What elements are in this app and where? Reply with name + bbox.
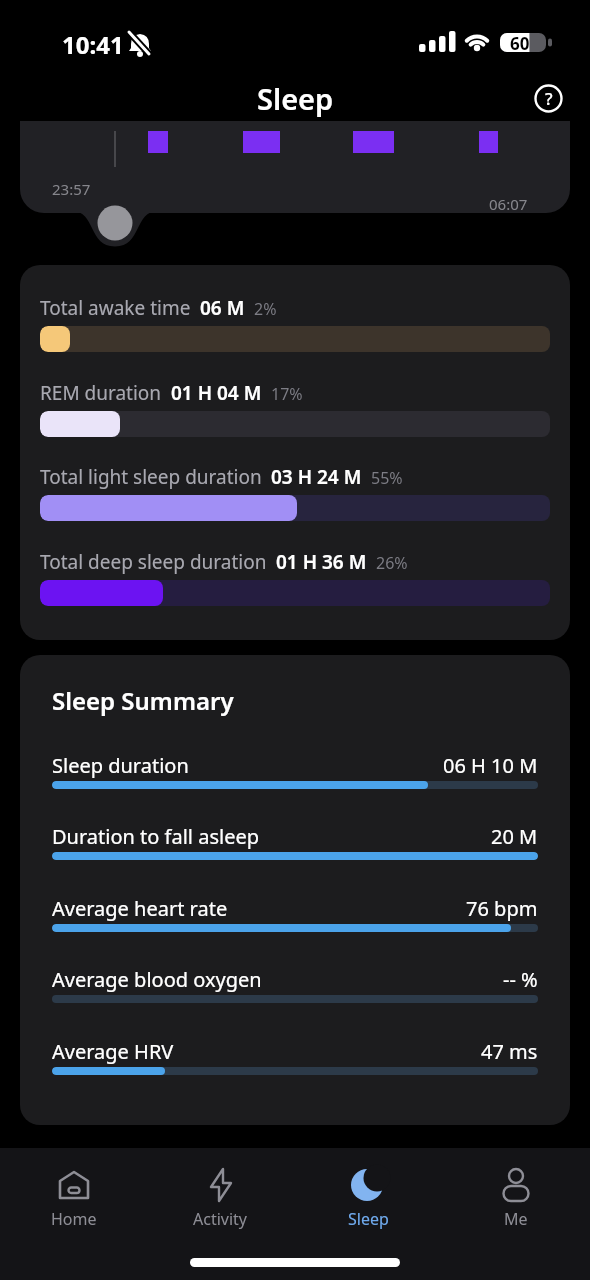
- staticText: 76 bpm: [466, 895, 538, 922]
- staticText: Me: [504, 1208, 528, 1230]
- staticText: REM duration: [40, 380, 162, 406]
- staticText: Sleep duration: [52, 752, 189, 779]
- staticText: 01 H 04 M: [171, 380, 262, 406]
- staticText: Average HRV: [52, 1038, 174, 1065]
- staticText: ?: [545, 87, 553, 110]
- button[interactable]: Activity: [147, 1148, 294, 1230]
- button[interactable]: Me: [442, 1148, 590, 1230]
- staticText: Activity: [193, 1208, 248, 1230]
- staticText: -- %: [503, 966, 538, 993]
- staticText: 26%: [376, 552, 408, 574]
- staticText: 55%: [371, 467, 403, 489]
- staticText: 06:07: [489, 194, 528, 214]
- button[interactable]: ?: [533, 83, 564, 114]
- staticText: 03 H 24 M: [271, 464, 362, 490]
- staticText: 01 H 36 M: [276, 549, 367, 575]
- staticText: 17%: [271, 383, 303, 405]
- staticText: 60: [510, 32, 530, 55]
- staticText: Total awake time: [40, 295, 191, 321]
- button[interactable]: Sleep: [294, 1148, 442, 1230]
- staticText: 23:57: [52, 179, 91, 199]
- staticText: 10:41: [62, 28, 124, 61]
- staticText: Sleep: [257, 79, 334, 118]
- button[interactable]: Home: [0, 1148, 147, 1230]
- staticText: Average blood oxygen: [52, 966, 262, 993]
- staticText: Home: [51, 1208, 97, 1230]
- staticText: Sleep Summary: [52, 684, 234, 717]
- staticText: 2%: [254, 298, 277, 320]
- staticText: 20 M: [491, 823, 538, 850]
- staticText: 06 H 10 M: [443, 752, 538, 779]
- staticText: Total deep sleep duration: [40, 549, 267, 575]
- staticText: 47 ms: [481, 1038, 538, 1065]
- staticText: Total light sleep duration: [40, 464, 262, 490]
- staticText: Duration to fall asleep: [52, 823, 260, 850]
- staticText: Average heart rate: [52, 895, 228, 922]
- staticText: 06 M: [200, 295, 245, 321]
- staticText: Sleep: [348, 1208, 389, 1230]
